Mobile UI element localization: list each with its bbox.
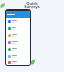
button[interactable] — [7, 32, 29, 39]
button[interactable] — [7, 25, 29, 32]
staticText: Surveys — [24, 4, 40, 9]
button[interactable] — [7, 60, 29, 65]
staticText: Quick — [26, 1, 38, 6]
button[interactable] — [7, 46, 29, 53]
button[interactable] — [7, 53, 29, 60]
button[interactable] — [7, 18, 29, 25]
button[interactable] — [7, 39, 29, 46]
